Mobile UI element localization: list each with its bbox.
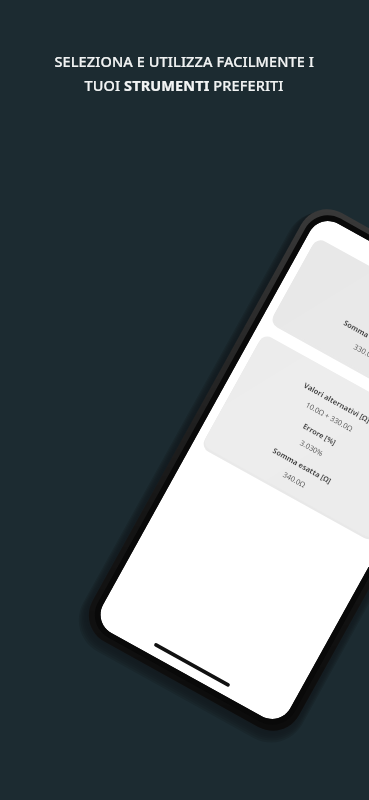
button[interactable]: Schermata app strumenti preferiti bbox=[0, 0, 369, 800]
